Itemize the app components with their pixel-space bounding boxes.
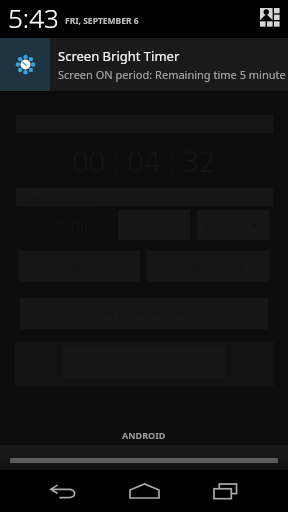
button[interactable]: Recent apps: [199, 470, 251, 512]
button[interactable]: Quick settings: [260, 8, 281, 28]
staticText: FRI, SEPTEMBER 6: [65, 15, 139, 27]
button[interactable]: Screen Bright Timer: [0, 38, 288, 91]
staticText: ANDROID: [122, 429, 166, 441]
button[interactable]: Close notification shade: [0, 445, 288, 470]
button[interactable]: Home: [118, 470, 170, 512]
staticText: Screen ON period: Remaining time 5 minut…: [58, 67, 286, 82]
button[interactable]: Back: [37, 470, 89, 512]
staticText: Screen Bright Timer: [58, 47, 180, 65]
staticText: 5:43: [8, 0, 59, 35]
